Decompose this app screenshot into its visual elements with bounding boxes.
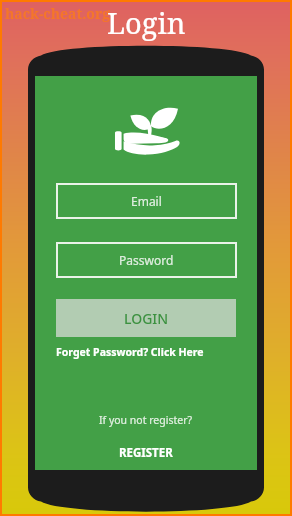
button[interactable]: REGISTER (119, 445, 173, 461)
button[interactable]: Email (56, 183, 237, 219)
staticText: hack-cheat.org (5, 4, 111, 23)
staticText: Password (119, 252, 174, 268)
button[interactable]: Password (56, 242, 237, 278)
staticText: REGISTER (119, 445, 173, 461)
button[interactable]: Forget Password? Click Here (56, 345, 204, 359)
button[interactable]: LOGIN (56, 299, 236, 337)
staticText: Forget Password? Click Here (56, 345, 204, 359)
staticText: LOGIN (124, 309, 169, 328)
staticText: If you not register? (99, 413, 193, 427)
staticText: Email (131, 193, 162, 209)
staticText: Login (107, 3, 186, 42)
